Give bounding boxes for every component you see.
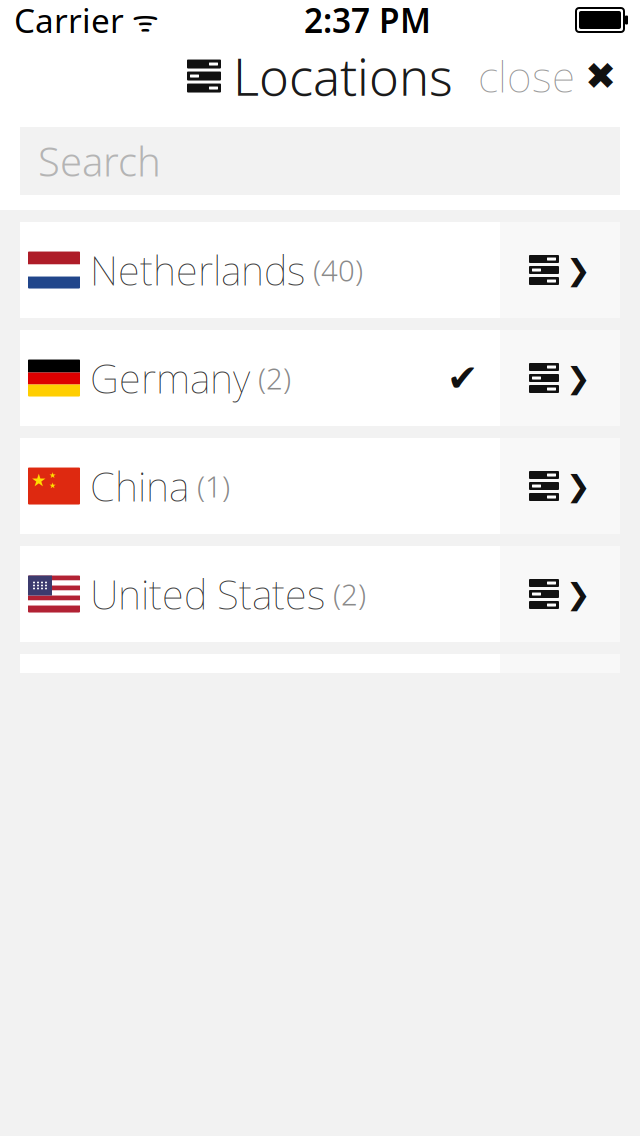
staticText: China — [90, 459, 189, 512]
button[interactable]: Germany — [20, 330, 500, 426]
button[interactable]: Singapore — [20, 654, 500, 750]
staticText: Locations — [233, 42, 453, 110]
button[interactable]: United States details — [500, 546, 620, 642]
staticText: 2:37 PM — [304, 0, 431, 42]
button[interactable]: close — [464, 38, 630, 114]
staticText: Carrier — [14, 0, 124, 42]
staticText: Germany — [90, 351, 250, 404]
staticText: ★ — [31, 470, 47, 490]
button[interactable]: ★ — [20, 438, 500, 534]
staticText: (40) — [305, 250, 363, 289]
staticText: ❯ — [566, 469, 591, 503]
button[interactable]: Germany details — [500, 330, 620, 426]
staticText: ❯ — [566, 253, 591, 287]
staticText: ★ — [49, 481, 56, 490]
staticText: ✔ — [447, 357, 478, 399]
staticText: (1) — [189, 466, 230, 505]
staticText: (2) — [250, 358, 291, 397]
staticText: ❯ — [566, 361, 591, 395]
staticText: ✖ — [585, 55, 616, 97]
button[interactable]: United States — [20, 546, 500, 642]
staticText: ❯ — [566, 577, 591, 611]
button[interactable]: Search — [20, 127, 620, 195]
staticText: ᯤ — [124, 0, 159, 39]
staticText: Netherlands — [90, 243, 305, 296]
button[interactable]: Netherlands — [20, 222, 500, 318]
staticText: close — [478, 48, 575, 104]
staticText: (2) — [325, 574, 366, 613]
button[interactable]: China details — [500, 438, 620, 534]
staticText: Search — [38, 134, 161, 187]
button[interactable]: Netherlands details — [500, 222, 620, 318]
staticText: ★ — [49, 471, 56, 480]
staticText: United States — [90, 567, 325, 620]
